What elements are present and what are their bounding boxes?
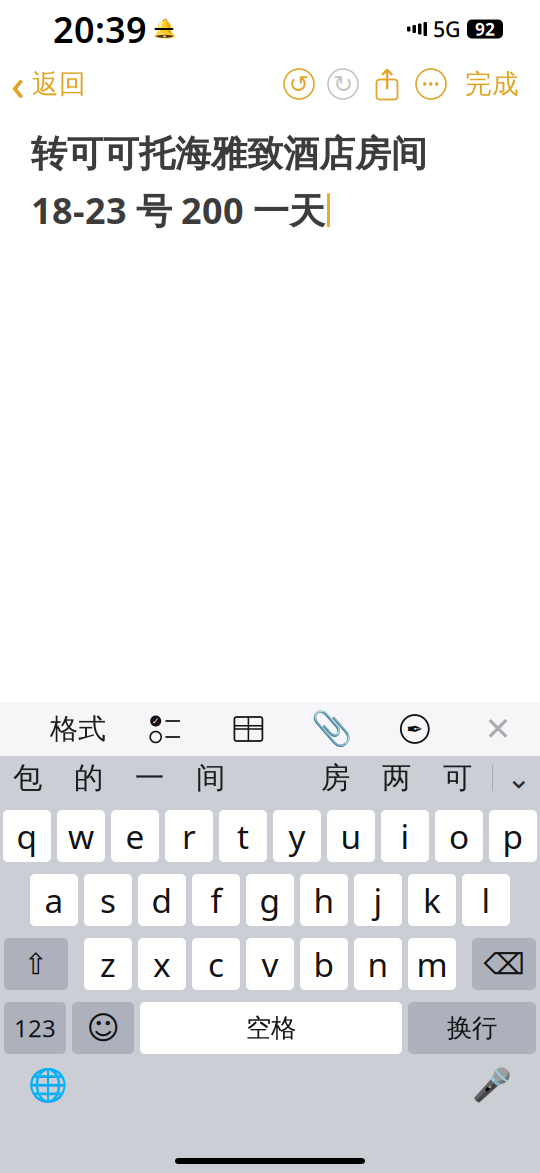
button[interactable]: 一 [123,756,176,800]
button[interactable]: More [409,62,453,106]
staticText: 房 [321,760,350,796]
button[interactable]: c [192,938,240,990]
staticText: ✒ [406,718,423,740]
staticText: d [151,878,172,922]
button[interactable]: d [138,874,186,926]
staticText: 92 [475,17,495,40]
button[interactable]: f [192,874,240,926]
button[interactable]: Shift [4,938,68,990]
staticText: m [416,942,447,986]
staticText: a [44,878,63,922]
button[interactable]: u [327,810,375,862]
button[interactable]: m [408,938,456,990]
staticText: v [261,942,278,986]
staticText: 转可可托海雅致酒店房间 [31,132,427,176]
button[interactable]: r [165,810,213,862]
staticText: r [182,814,196,858]
button[interactable]: Markup [388,702,442,756]
staticText: ⇧ [23,947,48,981]
button[interactable]: Attach [305,702,359,756]
button[interactable]: Return [408,1002,536,1054]
button[interactable]: b [300,938,348,990]
staticText: k [423,878,441,922]
staticText: t [237,814,249,858]
staticText: 间 [196,760,225,796]
button[interactable]: 可 [431,756,484,800]
button[interactable]: j [354,874,402,926]
staticText: f [210,878,221,922]
staticText: ☺ [86,1010,119,1046]
button[interactable]: Redo [321,62,365,106]
staticText: ✕ [484,711,511,747]
button[interactable]: y [273,810,321,862]
staticText: 格式 [50,712,106,746]
button[interactable]: a [30,874,78,926]
button[interactable]: Switch keyboard [21,1062,75,1108]
button[interactable]: w [57,810,105,862]
staticText: 返回 [32,68,86,100]
staticText: y [288,814,305,858]
button[interactable]: s [84,874,132,926]
button[interactable]: Emoji [72,1002,134,1054]
staticText: ⌫ [483,947,524,981]
staticText: i [400,814,409,858]
staticText: l [481,878,490,922]
staticText: w [68,814,94,858]
button[interactable]: 房 [309,756,362,800]
staticText: u [340,814,361,858]
staticText: 📎 [311,710,353,748]
staticText: 可 [443,760,472,796]
staticText: x [153,942,171,986]
button[interactable]: Delete [472,938,536,990]
button[interactable]: g [246,874,294,926]
button[interactable]: 空格 [140,1002,402,1054]
staticText: 🔔 [152,18,175,40]
button[interactable]: Checklist [138,702,192,756]
staticText: ↻ [333,70,353,98]
button[interactable]: More candidates [493,756,540,800]
button[interactable]: ‹ [0,58,96,110]
staticText: e [125,814,144,858]
button[interactable]: n [354,938,402,990]
button[interactable]: v [246,938,294,990]
button[interactable]: t [219,810,267,862]
button[interactable]: e [111,810,159,862]
staticText: p [502,814,523,858]
staticText: 5G [433,15,461,43]
button[interactable]: 两 [370,756,423,800]
staticText: 的 [74,760,103,796]
button[interactable]: l [462,874,510,926]
staticText: 🎤 [472,1067,512,1103]
staticText: ‹ [11,56,25,112]
staticText: 换行 [447,1012,497,1043]
button[interactable]: z [84,938,132,990]
button[interactable]: 的 [62,756,115,800]
staticText: n [367,942,388,986]
staticText: g [259,878,280,922]
button[interactable]: Share [365,62,409,106]
button[interactable]: 格式 [47,702,109,756]
button[interactable]: x [138,938,186,990]
staticText: 两 [382,760,411,796]
button[interactable]: Undo [277,62,321,106]
button[interactable]: Numbers [4,1002,66,1054]
button[interactable]: k [408,874,456,926]
button[interactable]: 完成 [453,58,531,110]
button[interactable]: q [3,810,51,862]
button[interactable]: o [435,810,483,862]
button[interactable]: 包 [1,756,54,800]
staticText: s [100,878,116,922]
button[interactable]: Dictate [465,1062,519,1108]
button[interactable]: Table [221,702,275,756]
button[interactable]: p [489,810,537,862]
button[interactable]: 间 [184,756,237,800]
staticText: 一 [135,760,164,796]
button[interactable]: Close keyboard [471,702,525,756]
staticText: h [313,878,334,922]
button[interactable]: h [300,874,348,926]
staticText: 完成 [465,68,519,100]
button[interactable]: i [381,810,429,862]
staticText: c [208,942,224,986]
